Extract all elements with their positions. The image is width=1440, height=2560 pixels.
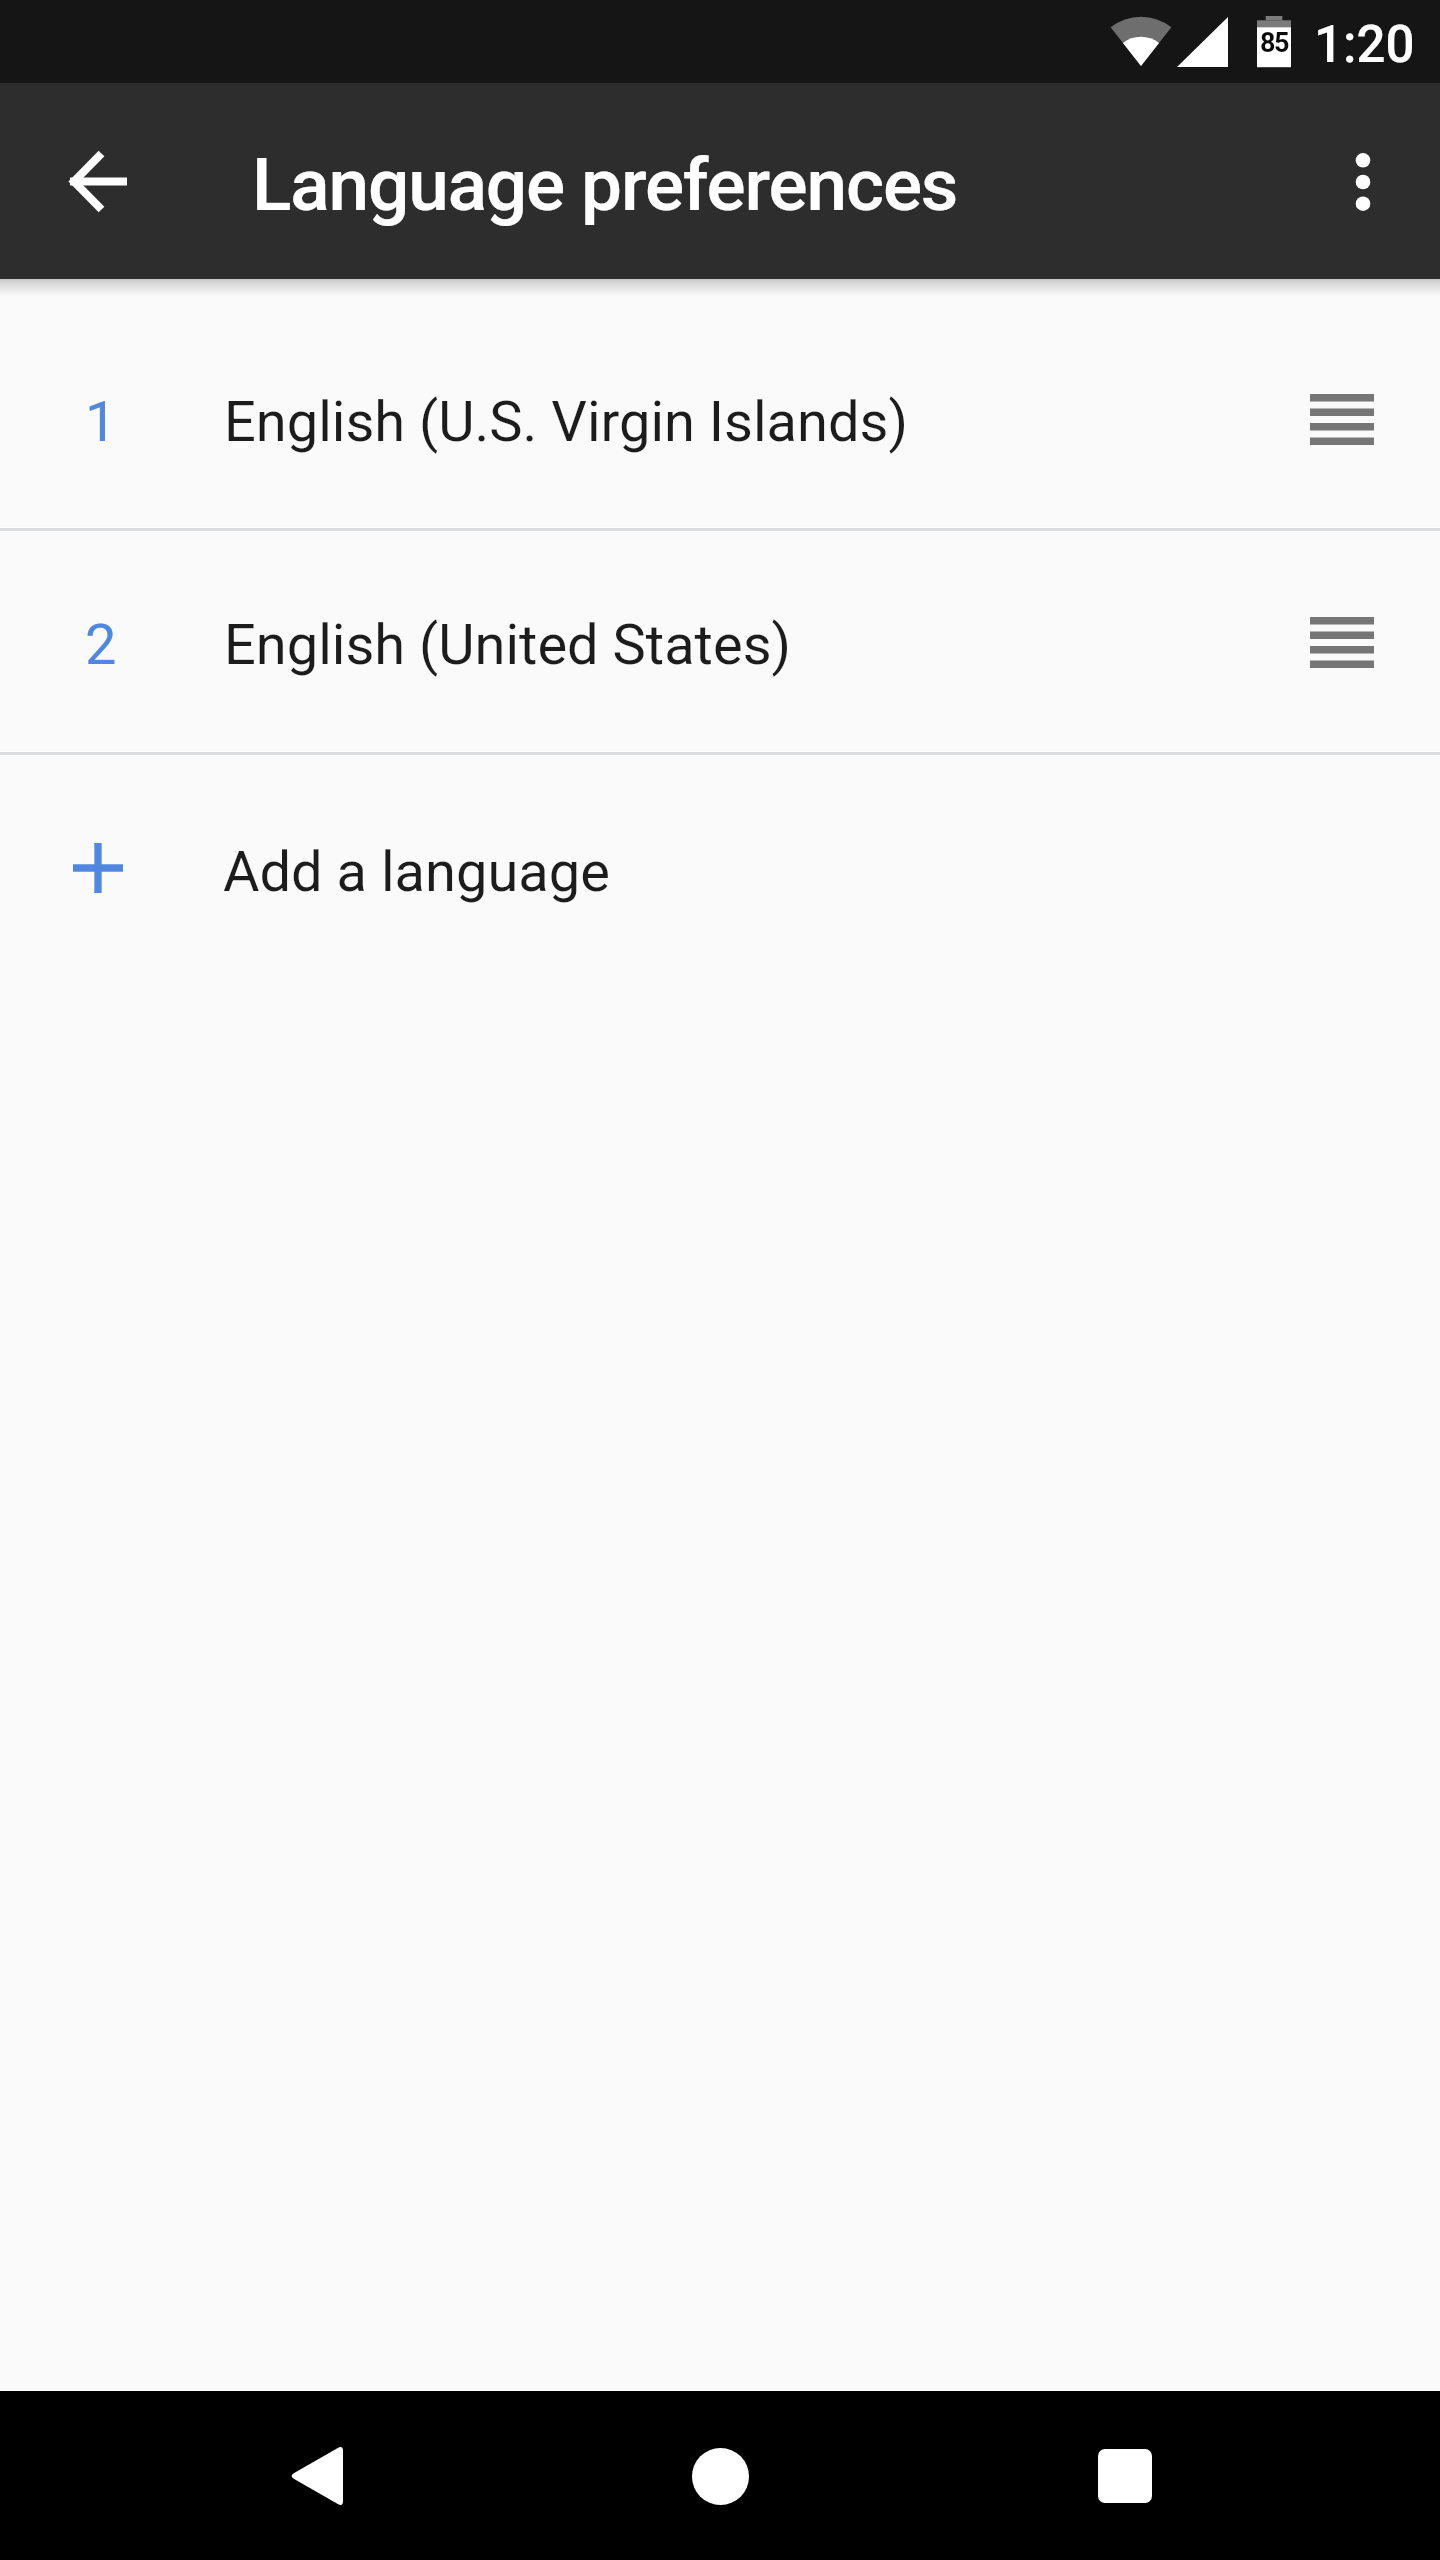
staticText: English (United States) <box>224 612 792 678</box>
staticText: Language preferences <box>252 142 958 228</box>
staticText: 2 <box>85 612 117 678</box>
button[interactable]: More options <box>1305 123 1421 239</box>
button[interactable]: 2 <box>0 532 1440 751</box>
staticText: 85 <box>1260 27 1288 59</box>
staticText: English (U.S. Virgin Islands) <box>224 389 908 455</box>
button[interactable]: Reorder English (United States) <box>1282 582 1402 702</box>
button[interactable]: 1 <box>0 311 1440 527</box>
button[interactable]: Add a language <box>0 756 1440 976</box>
staticText: 1 <box>85 389 117 455</box>
staticText: Add a language <box>223 839 610 905</box>
button[interactable]: Reorder English (U.S. Virgin Islands) <box>1282 359 1402 479</box>
button[interactable]: Home <box>660 2416 780 2536</box>
button[interactable]: Navigate up <box>40 123 156 239</box>
staticText: 1:20 <box>1314 15 1415 75</box>
button[interactable]: Recent apps <box>1065 2416 1185 2536</box>
button[interactable]: Back <box>256 2416 376 2536</box>
